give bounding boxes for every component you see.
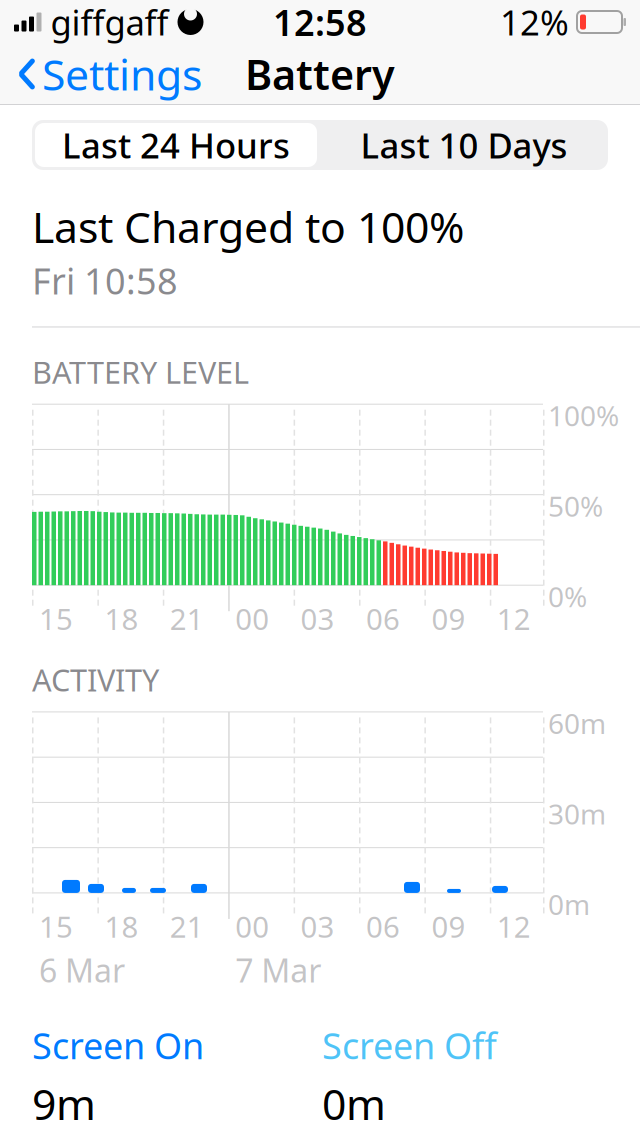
staticText: 21 xyxy=(170,599,204,638)
staticText: 06 xyxy=(366,907,400,946)
staticText: Last 10 Days xyxy=(360,122,567,168)
staticText: ACTIVITY xyxy=(32,659,159,700)
staticText: Last 24 Hours xyxy=(62,122,290,168)
staticText: Screen On xyxy=(32,1021,204,1069)
staticText: 50% xyxy=(548,487,603,524)
staticText: 00 xyxy=(235,907,269,946)
staticText: 03 xyxy=(301,907,335,946)
staticText: Settings xyxy=(42,46,202,102)
staticText: 60m xyxy=(548,704,606,742)
staticText: 06 xyxy=(366,599,400,638)
staticText: 6 Mar xyxy=(39,949,125,991)
staticText: Last Charged to 100% xyxy=(32,198,464,255)
staticText: Battery xyxy=(245,47,395,101)
staticText: Screen Off xyxy=(322,1021,497,1069)
staticText: 12 xyxy=(497,599,531,638)
staticText: 30m xyxy=(548,795,606,832)
staticText: 0m xyxy=(322,1075,386,1132)
staticText: 15 xyxy=(39,907,73,946)
staticText: BATTERY LEVEL xyxy=(32,351,249,392)
staticText: 09 xyxy=(431,907,465,946)
staticText: 100% xyxy=(548,397,619,434)
staticText: 18 xyxy=(104,599,138,638)
staticText: 0m xyxy=(548,885,590,923)
staticText: 9m xyxy=(32,1075,96,1132)
button[interactable]: Last 10 Days xyxy=(320,120,608,170)
button[interactable]: Last 24 Hours xyxy=(32,120,320,170)
staticText: 0% xyxy=(548,578,587,615)
staticText: 12:58 xyxy=(273,0,367,46)
staticText: 03 xyxy=(301,599,335,638)
staticText: giffgaff xyxy=(50,0,168,45)
staticText: 18 xyxy=(104,907,138,946)
staticText: 12 xyxy=(497,907,531,946)
staticText: 00 xyxy=(235,599,269,638)
staticText: 09 xyxy=(431,599,465,638)
staticText: 21 xyxy=(170,907,204,946)
staticText: Fri 10:58 xyxy=(32,257,178,304)
staticText: 7 Mar xyxy=(235,949,321,991)
staticText: 15 xyxy=(39,599,73,638)
button[interactable]: Settings xyxy=(0,40,202,108)
staticText: 12% xyxy=(500,0,569,45)
